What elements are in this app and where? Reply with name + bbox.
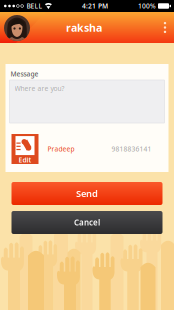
staticText: 4:21 PM xyxy=(82,2,108,10)
staticText: Cancel xyxy=(74,217,100,228)
button[interactable]: Send xyxy=(11,182,162,205)
button[interactable]: Edit contact xyxy=(11,134,38,164)
button[interactable]: More options xyxy=(156,12,174,43)
staticText: 9818836141 xyxy=(111,145,151,153)
staticText: Message xyxy=(10,70,38,78)
staticText: Edit xyxy=(18,156,31,164)
button[interactable]: Profile xyxy=(0,12,34,43)
staticText: Where are you? xyxy=(14,84,64,93)
staticText: BELL xyxy=(26,2,42,10)
staticText: raksha xyxy=(66,20,102,35)
staticText: Pradeep xyxy=(47,145,74,153)
button[interactable]: Cancel xyxy=(11,211,162,234)
staticText: Send xyxy=(76,187,98,200)
staticText: 100% xyxy=(138,2,156,10)
